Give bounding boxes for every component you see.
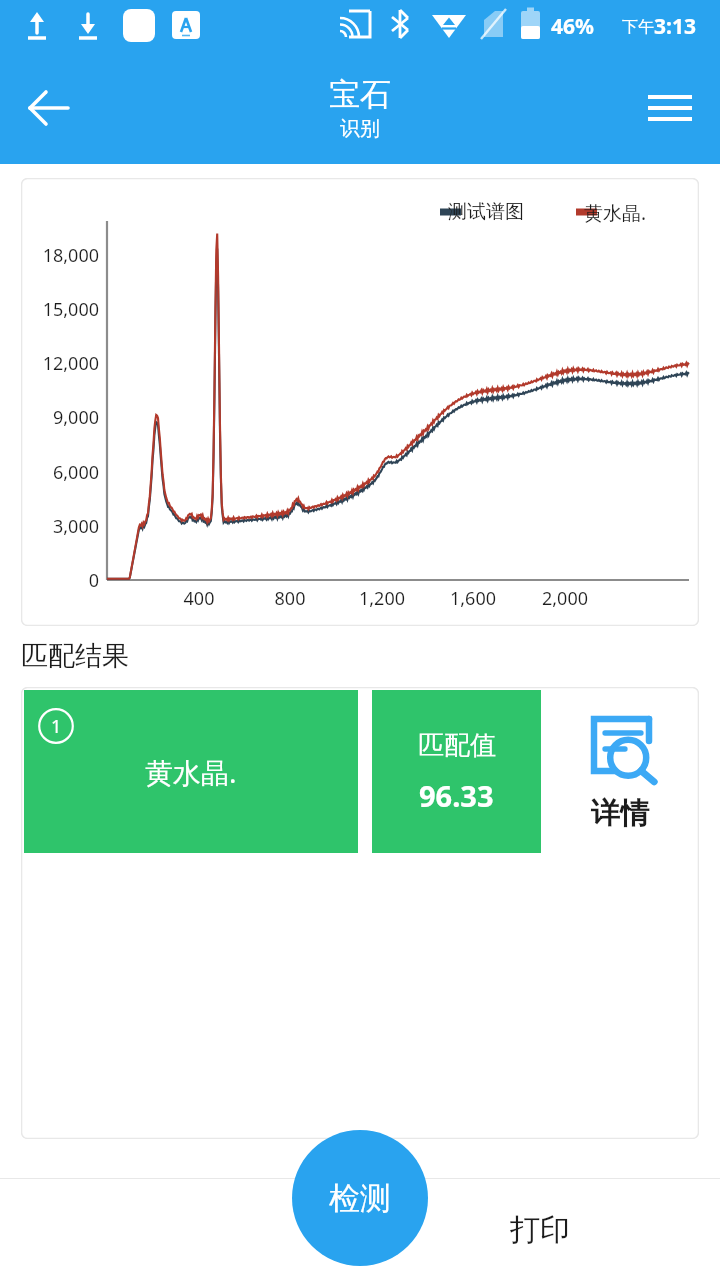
staticText: 46% bbox=[551, 12, 594, 41]
staticText: 1,200 bbox=[352, 586, 412, 611]
staticText: 15,000 bbox=[21, 297, 99, 322]
staticText: 下午 bbox=[622, 17, 654, 37]
button[interactable]: Menu bbox=[638, 76, 702, 140]
staticText: 3:13 bbox=[654, 12, 696, 41]
staticText: 18,000 bbox=[21, 243, 99, 268]
button[interactable]: Back bbox=[14, 72, 86, 144]
button[interactable]: 黄水晶. bbox=[24, 690, 358, 853]
staticText: 测试谱图 bbox=[448, 200, 524, 224]
button[interactable]: 详情 bbox=[541, 690, 699, 853]
staticText: 0 bbox=[21, 568, 99, 593]
staticText: 96.33 bbox=[419, 776, 494, 815]
button[interactable]: 打印 bbox=[440, 1179, 640, 1280]
staticText: 检测 bbox=[329, 1179, 391, 1218]
staticText: 1,600 bbox=[443, 586, 503, 611]
staticText: 黄水晶. bbox=[145, 753, 237, 791]
staticText: 宝石 bbox=[329, 75, 391, 114]
staticText: 800 bbox=[260, 586, 320, 611]
staticText: 6,000 bbox=[21, 460, 99, 485]
staticText: 识别 bbox=[340, 116, 380, 141]
staticText: 1 bbox=[51, 714, 62, 739]
staticText: 详情 bbox=[591, 795, 649, 832]
staticText: 黄水晶. bbox=[584, 200, 647, 226]
staticText: 3,000 bbox=[21, 514, 99, 539]
button[interactable]: 匹配值 bbox=[372, 690, 541, 853]
staticText: 9,000 bbox=[21, 405, 99, 430]
staticText: 2,000 bbox=[535, 586, 595, 611]
staticText: 12,000 bbox=[21, 351, 99, 376]
button[interactable]: 检测 bbox=[292, 1130, 428, 1266]
staticText: 400 bbox=[169, 586, 229, 611]
staticText: 匹配值 bbox=[418, 729, 496, 762]
staticText: 打印 bbox=[510, 1211, 570, 1249]
staticText: 匹配结果 bbox=[21, 639, 129, 673]
